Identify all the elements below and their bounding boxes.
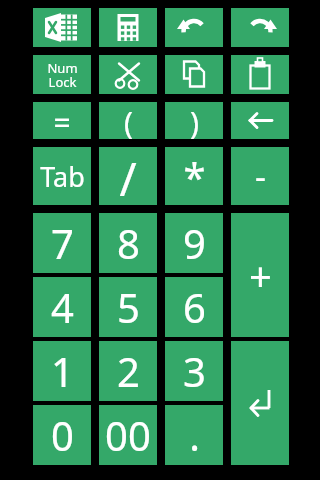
staticText: * [183, 149, 206, 203]
button[interactable]: Tab [33, 147, 91, 205]
button[interactable]: * [165, 147, 223, 205]
staticText: 4 [51, 280, 74, 334]
button[interactable]: - [231, 147, 289, 205]
button[interactable]: 0 [33, 405, 91, 465]
staticText: ) [190, 102, 199, 139]
staticText: ( [124, 102, 133, 139]
staticText: = [53, 102, 71, 139]
button[interactable]: Calculator [99, 8, 157, 47]
button[interactable]: / [99, 147, 157, 205]
button[interactable]: Enter [231, 341, 289, 465]
staticText: 6 [183, 280, 206, 334]
staticText: 5 [117, 280, 140, 334]
button[interactable]: 1 [33, 341, 91, 401]
button[interactable]: + [231, 213, 289, 337]
staticText: 9 [183, 216, 206, 270]
staticText: 3 [183, 344, 206, 398]
button[interactable]: 4 [33, 277, 91, 337]
button[interactable]: Undo [165, 8, 223, 47]
button[interactable]: Cut [99, 55, 157, 94]
button[interactable]: 6 [165, 277, 223, 337]
button[interactable]: ) [165, 102, 223, 139]
button[interactable]: 9 [165, 213, 223, 273]
staticText: 00 [105, 408, 151, 462]
button[interactable]: 5 [99, 277, 157, 337]
staticText: . [189, 408, 200, 462]
button[interactable]: Num Lock [33, 55, 91, 94]
button[interactable]: Paste [231, 55, 289, 94]
button[interactable]: Backspace [231, 102, 289, 139]
staticText: 2 [117, 344, 140, 398]
button[interactable]: 3 [165, 341, 223, 401]
button[interactable]: Excel [33, 8, 91, 47]
button[interactable]: 2 [99, 341, 157, 401]
staticText: - [255, 153, 266, 199]
staticText: 7 [51, 216, 74, 270]
button[interactable]: Copy [165, 55, 223, 94]
button[interactable]: = [33, 102, 91, 139]
staticText: / [119, 147, 137, 205]
button[interactable]: ( [99, 102, 157, 139]
button[interactable]: 8 [99, 213, 157, 273]
staticText: 0 [51, 408, 74, 462]
staticText: Tab [40, 158, 85, 195]
button[interactable]: 7 [33, 213, 91, 273]
staticText: 1 [51, 344, 74, 398]
button[interactable]: 00 [99, 405, 157, 465]
button[interactable]: . [165, 405, 223, 465]
staticText: 8 [117, 216, 140, 270]
staticText: Num Lock [47, 59, 78, 91]
button[interactable]: Redo [231, 8, 289, 47]
staticText: + [249, 248, 272, 302]
